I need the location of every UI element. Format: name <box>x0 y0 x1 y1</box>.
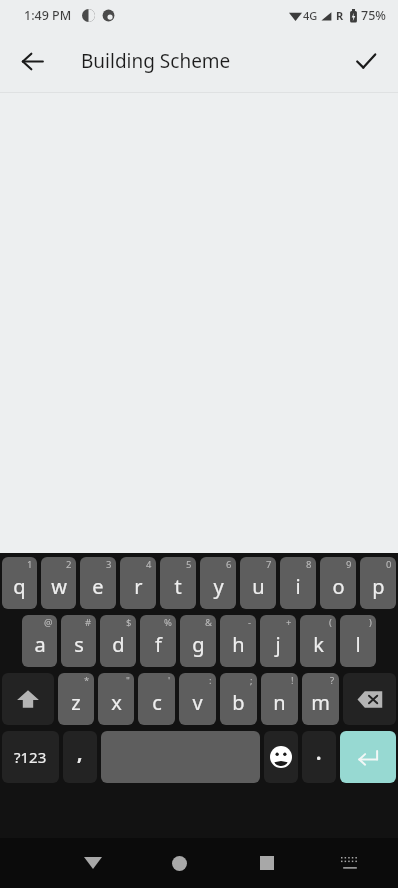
staticText: b <box>232 689 245 716</box>
staticText: ! <box>291 674 294 687</box>
staticText: c <box>152 689 162 716</box>
staticText: " <box>126 674 130 687</box>
staticText: u <box>252 573 265 600</box>
staticText: ' <box>168 674 171 687</box>
staticText: a <box>34 631 46 658</box>
staticText: i <box>295 573 301 600</box>
staticText: R <box>336 8 344 23</box>
staticText: p <box>372 573 385 600</box>
button[interactable]: 0 <box>360 557 396 609</box>
button[interactable]: # <box>61 615 96 667</box>
staticText: f <box>155 631 162 658</box>
staticText: 3 <box>106 558 112 571</box>
button[interactable]: Emoji <box>264 731 298 783</box>
button[interactable]: $ <box>100 615 136 667</box>
staticText: 75% <box>361 7 386 24</box>
staticText: 4 <box>146 558 152 571</box>
staticText: 7 <box>266 558 272 571</box>
button[interactable]: Back <box>8 37 56 85</box>
button[interactable]: ' <box>138 673 175 725</box>
button[interactable]: Recent apps <box>223 838 310 888</box>
staticText: : <box>209 674 212 687</box>
button[interactable]: Confirm <box>342 37 390 85</box>
button[interactable]: Shift <box>2 673 54 725</box>
staticText: ?123 <box>14 747 47 767</box>
button[interactable]: 6 <box>200 557 236 609</box>
staticText: d <box>112 631 125 658</box>
button[interactable]: " <box>98 673 134 725</box>
staticText: 1 <box>27 558 33 571</box>
staticText: k <box>313 631 324 658</box>
button[interactable]: ?123 <box>2 731 59 783</box>
button[interactable]: ; <box>220 673 257 725</box>
staticText: , <box>77 740 83 766</box>
staticText: y <box>213 573 224 600</box>
button[interactable]: : <box>179 673 216 725</box>
button[interactable]: - <box>220 615 256 667</box>
button[interactable]: & <box>180 615 216 667</box>
staticText: $ <box>126 616 132 629</box>
staticText: 1:49 PM <box>24 7 72 24</box>
staticText: # <box>85 616 92 629</box>
staticText: 2 <box>66 558 72 571</box>
staticText: t <box>174 573 182 600</box>
staticText: & <box>205 616 212 629</box>
button[interactable]: 1 <box>2 557 37 609</box>
button[interactable]: 7 <box>240 557 276 609</box>
staticText: o <box>332 573 345 600</box>
staticText: z <box>71 689 81 716</box>
staticText: x <box>111 689 122 716</box>
staticText: ; <box>250 674 253 687</box>
staticText: g <box>192 631 205 658</box>
staticText: Building Scheme <box>81 48 231 74</box>
staticText: e <box>92 573 104 600</box>
button[interactable]: 9 <box>320 557 356 609</box>
staticText: . <box>316 740 322 766</box>
staticText: ? <box>330 674 335 687</box>
staticText: m <box>311 689 330 716</box>
staticText: % <box>164 616 172 629</box>
staticText: q <box>13 573 26 600</box>
staticText: w <box>51 573 67 600</box>
staticText: + <box>286 616 292 629</box>
button[interactable]: + <box>260 615 296 667</box>
staticText: 9 <box>346 558 352 571</box>
staticText: h <box>232 631 245 658</box>
button[interactable]: 5 <box>160 557 196 609</box>
staticText: n <box>273 689 286 716</box>
button[interactable]: Hide keyboard <box>49 838 136 888</box>
button[interactable]: Switch keyboard <box>310 838 389 888</box>
staticText: 4G <box>303 8 318 23</box>
button[interactable]: . <box>302 731 336 783</box>
staticText: r <box>134 573 143 600</box>
staticText: 0 <box>386 558 392 571</box>
staticText: l <box>355 631 361 658</box>
staticText: - <box>248 616 252 629</box>
button[interactable]: Home <box>136 838 223 888</box>
staticText: 6 <box>226 558 232 571</box>
staticText: * <box>84 674 90 687</box>
button[interactable]: ( <box>300 615 336 667</box>
button[interactable]: * <box>58 673 94 725</box>
staticText: 8 <box>306 558 312 571</box>
button[interactable]: 8 <box>280 557 316 609</box>
button[interactable]: ? <box>302 673 339 725</box>
button[interactable]: 2 <box>41 557 76 609</box>
button[interactable]: @ <box>22 615 57 667</box>
staticText: s <box>74 631 84 658</box>
button[interactable]: % <box>140 615 176 667</box>
staticText: 5 <box>186 558 192 571</box>
button[interactable]: Space <box>101 731 260 783</box>
button[interactable]: ) <box>340 615 376 667</box>
button[interactable]: 3 <box>80 557 116 609</box>
staticText: @ <box>44 616 53 629</box>
staticText: j <box>275 631 281 658</box>
button[interactable]: Backspace <box>343 673 396 725</box>
button[interactable]: , <box>63 731 97 783</box>
staticText: v <box>192 689 203 716</box>
staticText: ( <box>329 616 332 629</box>
staticText: ) <box>369 616 372 629</box>
button[interactable]: Enter <box>340 731 396 783</box>
button[interactable]: ! <box>261 673 298 725</box>
button[interactable]: 4 <box>120 557 156 609</box>
